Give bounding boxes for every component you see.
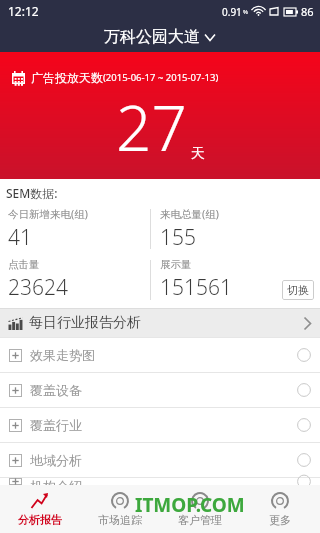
button[interactable]: 机构介绍 — [0, 478, 320, 485]
staticText: 151561 — [160, 273, 232, 302]
button[interactable]: 每日行业报告分析 — [0, 309, 320, 337]
button[interactable]: 地域分析 — [0, 443, 320, 477]
staticText: 覆盖行业 — [30, 417, 297, 433]
staticText: 来电总量(组) — [160, 207, 219, 221]
button[interactable]: 客户管理 — [160, 485, 240, 533]
button[interactable]: 更多 — [240, 485, 320, 533]
staticText: 今日新增来电(组) — [8, 207, 88, 221]
other: 帮助 — [297, 348, 311, 362]
staticText: SEM数据: — [6, 185, 58, 201]
other: 展开每日行业报告分析 — [303, 316, 312, 331]
staticText: 覆盖设备 — [30, 382, 297, 398]
button[interactable]: 市场追踪 — [80, 485, 160, 533]
staticText: 天 — [191, 145, 205, 163]
staticText: 机构介绍 — [30, 478, 297, 485]
staticText: 切换 — [287, 283, 309, 297]
staticText: 155 — [160, 223, 196, 251]
staticText: 客户管理 — [178, 513, 222, 527]
staticText: ITMOP.COM — [135, 492, 245, 518]
staticText: % — [243, 8, 248, 16]
staticText: 27 — [116, 85, 187, 169]
button[interactable]: 覆盖设备 — [0, 373, 320, 407]
staticText: 广告投放天数 — [31, 70, 103, 85]
staticText: 0.91 — [222, 5, 242, 19]
staticText: 23624 — [8, 273, 68, 302]
staticText: 效果走势图 — [30, 347, 297, 363]
staticText: 市场追踪 — [98, 513, 142, 527]
button[interactable]: 覆盖行业 — [0, 408, 320, 442]
staticText: 每日行业报告分析 — [29, 314, 303, 332]
staticText: 展示量 — [160, 258, 192, 271]
other: 帮助 — [297, 383, 311, 397]
other: 帮助 — [297, 478, 311, 485]
button[interactable]: 效果走势图 — [0, 338, 320, 372]
staticText: 41 — [8, 223, 32, 251]
staticText: 点击量 — [8, 258, 40, 271]
other: 帮助 — [297, 418, 311, 432]
staticText: 86 — [301, 4, 314, 19]
button[interactable]: 分析报告 — [0, 485, 80, 533]
other: 帮助 — [297, 453, 311, 467]
staticText: 地域分析 — [30, 452, 297, 468]
staticText: 万科公园大道 — [104, 27, 200, 47]
staticText: 更多 — [269, 513, 291, 527]
staticText: 12:12 — [8, 3, 39, 19]
staticText: 分析报告 — [18, 513, 62, 527]
button[interactable]: 切换 — [282, 280, 314, 300]
staticText: (2015-06-17 ~ 2015-07-13) — [103, 71, 219, 84]
button[interactable]: 万科公园大道 — [0, 22, 320, 52]
